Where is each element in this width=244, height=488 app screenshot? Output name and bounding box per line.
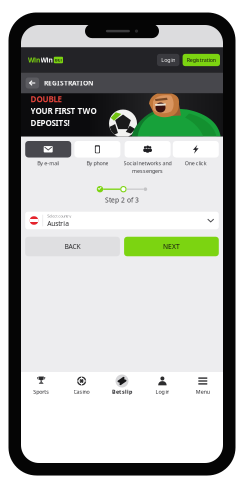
button[interactable]: Select country (25, 212, 219, 229)
staticText: Menu (196, 388, 210, 395)
button[interactable]: Bet slip (102, 375, 142, 395)
staticText: DEPOSITS! (30, 117, 69, 128)
staticText: Select country (47, 213, 71, 219)
button[interactable]: Log in (142, 375, 183, 395)
button[interactable]: By phone (74, 141, 120, 185)
staticText: NEXT (163, 242, 180, 251)
staticText: Log in (161, 56, 175, 64)
staticText: Casino (74, 388, 90, 395)
staticText: Austria (47, 219, 69, 228)
staticText: Registration (187, 56, 216, 64)
button[interactable]: Log in (157, 54, 179, 66)
staticText: DOUBLE (30, 94, 61, 104)
staticText: By phone (86, 160, 108, 167)
staticText: Log in (155, 388, 169, 395)
staticText: Bet slip (112, 388, 132, 395)
button[interactable]: Casino (61, 375, 102, 395)
staticText: BET (55, 57, 62, 63)
staticText: Social networks and (124, 160, 172, 167)
button[interactable]: NEXT (124, 237, 219, 256)
button[interactable]: Menu (183, 375, 223, 395)
staticText: REGISTRATION (44, 79, 93, 87)
button[interactable]: Back (26, 77, 39, 88)
staticText: YOUR FIRST TWO (30, 106, 96, 116)
staticText: By e-mail (37, 160, 59, 167)
staticText: BACK (64, 242, 80, 251)
button[interactable]: Sports (21, 375, 61, 395)
button[interactable]: Social networks and (124, 141, 170, 185)
button[interactable]: By e-mail (25, 141, 71, 185)
staticText: Win (28, 56, 40, 64)
button[interactable]: One click (173, 141, 219, 185)
button[interactable]: Registration (183, 54, 220, 66)
button[interactable]: BACK (25, 237, 120, 256)
staticText: Step 2 of 3 (105, 195, 139, 204)
staticText: Win (40, 56, 52, 64)
staticText: messengers (132, 167, 163, 174)
staticText: One click (185, 160, 207, 167)
staticText: Sports (33, 388, 49, 395)
